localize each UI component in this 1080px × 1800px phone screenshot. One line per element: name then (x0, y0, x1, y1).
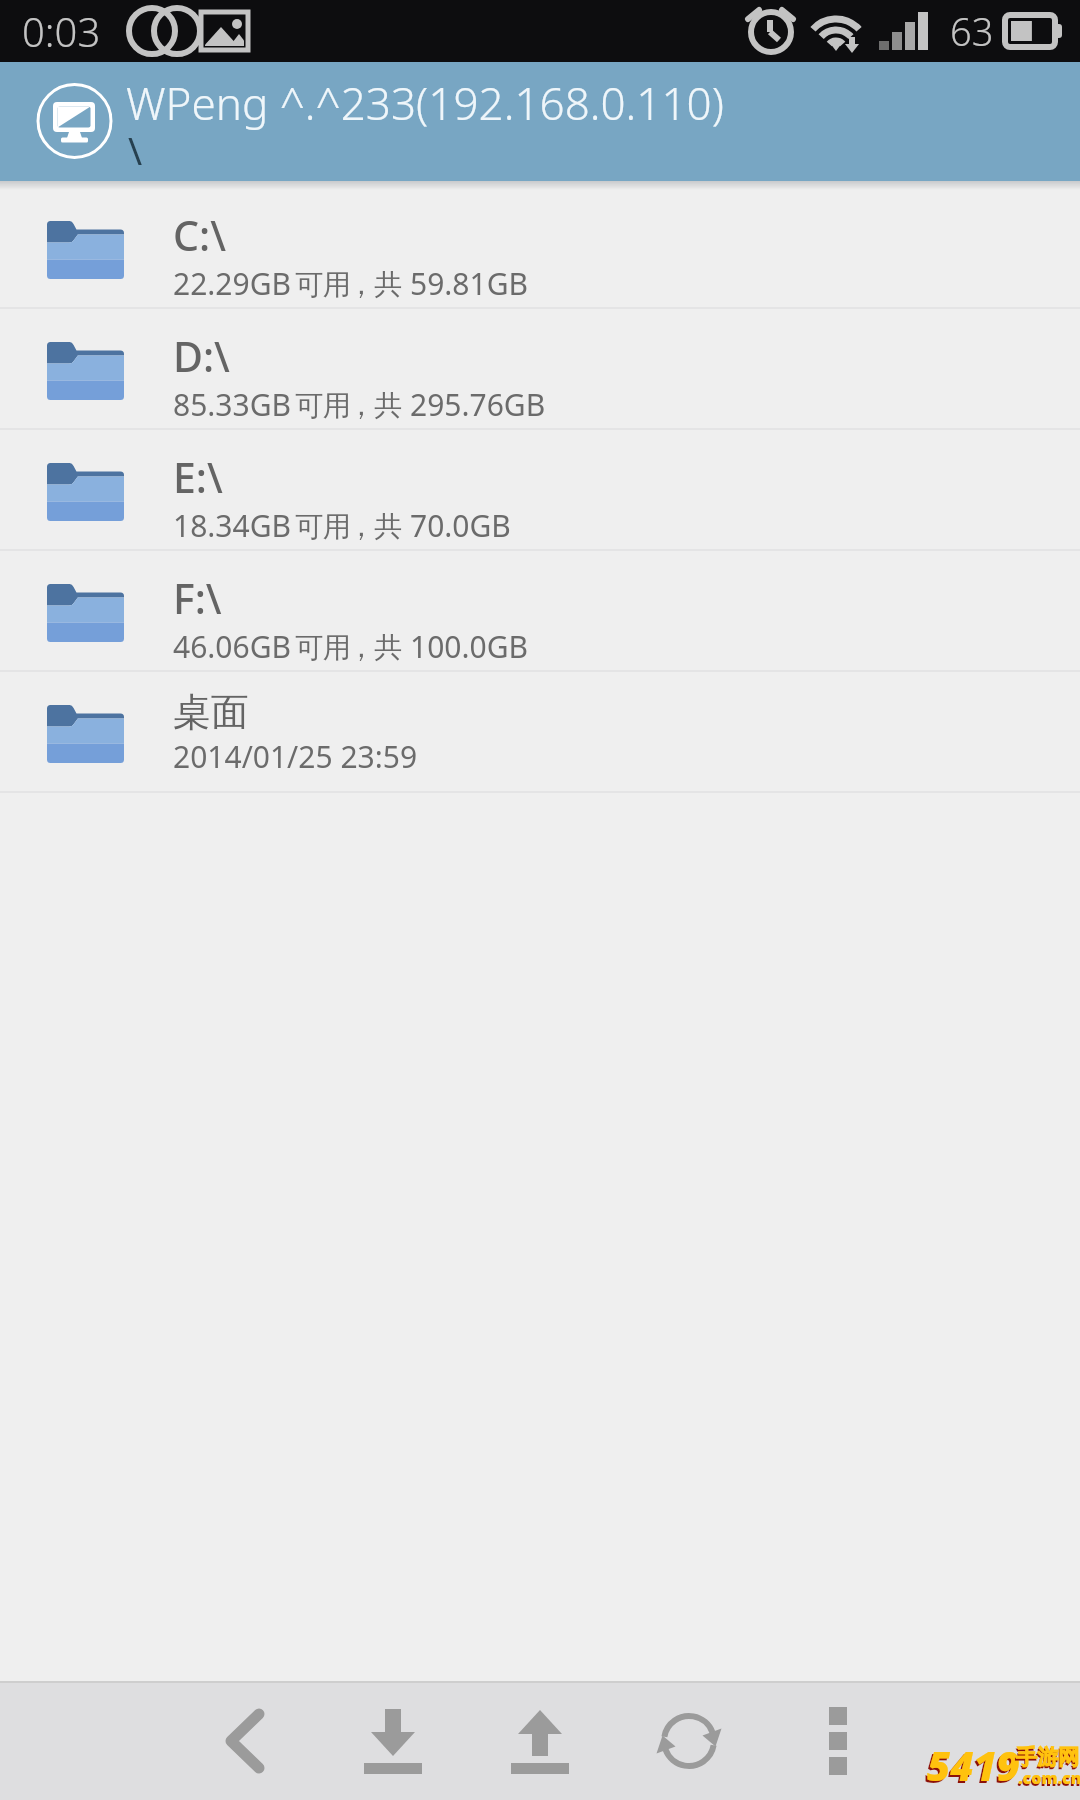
staticText: 46.06GB (173, 626, 292, 667)
button[interactable]: Refresh (631, 1681, 747, 1800)
staticText: WPeng ^.^233(192.168.0.110) (126, 73, 724, 133)
staticText: 63 (950, 5, 994, 57)
staticText: 共 (374, 509, 402, 544)
staticText: .com.cn (1017, 1769, 1080, 1791)
staticText: 18.34GB (173, 505, 292, 546)
staticText: 共 (374, 388, 402, 423)
staticText: \ (128, 124, 143, 176)
staticText: 22.29GB (173, 263, 292, 304)
button[interactable]: 桌面 (0, 672, 1080, 793)
staticText: 0:03 (22, 4, 101, 58)
button[interactable]: F:\ (0, 551, 1080, 672)
staticText: ， (347, 630, 375, 665)
staticText: 可用 (295, 388, 351, 423)
staticText: 2014/01/25 23:59 (173, 736, 418, 777)
button[interactable]: Download (335, 1681, 451, 1800)
staticText: 手游网 (1016, 1744, 1079, 1770)
staticText: E:\ (173, 449, 223, 505)
staticText: C:\ (173, 207, 226, 263)
staticText: 59.81GB (410, 263, 529, 304)
staticText: 桌面 (173, 688, 249, 736)
staticText: D:\ (173, 328, 230, 384)
button[interactable]: Computer (36, 82, 113, 160)
staticText: 5419 (925, 1740, 1018, 1794)
staticText: 共 (374, 630, 402, 665)
staticText: 100.0GB (410, 626, 529, 667)
button[interactable]: Upload (482, 1681, 598, 1800)
staticText: ， (347, 388, 375, 423)
staticText: F:\ (173, 570, 222, 626)
button[interactable]: C:\ (0, 188, 1080, 309)
staticText: 可用 (295, 630, 351, 665)
staticText: 手游网 (1015, 1746, 1078, 1772)
button[interactable]: Back (187, 1681, 303, 1800)
staticText: ， (347, 509, 375, 544)
staticText: 85.33GB (173, 384, 292, 425)
button[interactable]: More options (780, 1681, 896, 1800)
staticText: 共 (374, 267, 402, 302)
staticText: ， (347, 267, 375, 302)
staticText: 可用 (295, 267, 351, 302)
button[interactable]: E:\ (0, 430, 1080, 551)
staticText: 70.0GB (410, 505, 511, 546)
button[interactable]: D:\ (0, 309, 1080, 430)
staticText: 295.76GB (410, 384, 546, 425)
staticText: 5419 (927, 1738, 1020, 1792)
staticText: 可用 (295, 509, 351, 544)
staticText: .com.cn (1018, 1767, 1080, 1789)
